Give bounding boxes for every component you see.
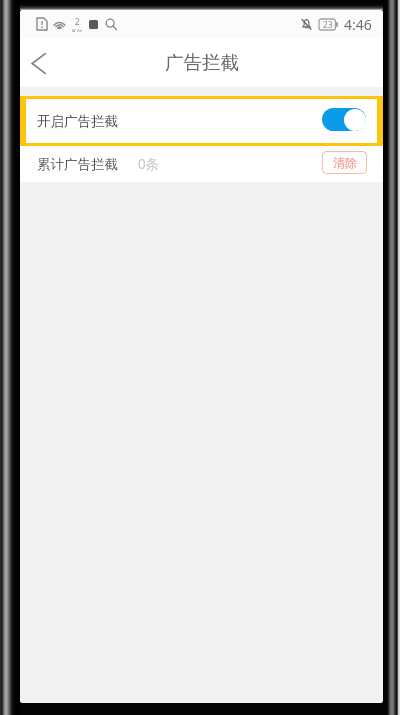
staticText: 累计广告拦截 xyxy=(37,156,118,173)
button[interactable]: 累计广告拦截 xyxy=(20,146,383,182)
staticText: K/s xyxy=(72,27,83,32)
staticText: 广告拦截 xyxy=(165,51,239,74)
staticText: 清除 xyxy=(333,155,357,170)
staticText: 开启广告拦截 xyxy=(37,113,118,130)
staticText: 23 xyxy=(323,19,333,30)
staticText: 4:46 xyxy=(344,15,372,34)
button[interactable]: 清除 xyxy=(322,151,367,174)
button[interactable]: 开启广告拦截 xyxy=(26,99,377,143)
staticText: 2 xyxy=(75,16,80,27)
button[interactable]: Enable ad blocking xyxy=(322,108,366,131)
staticText: 0条 xyxy=(138,155,160,173)
button[interactable]: Back xyxy=(20,41,60,85)
